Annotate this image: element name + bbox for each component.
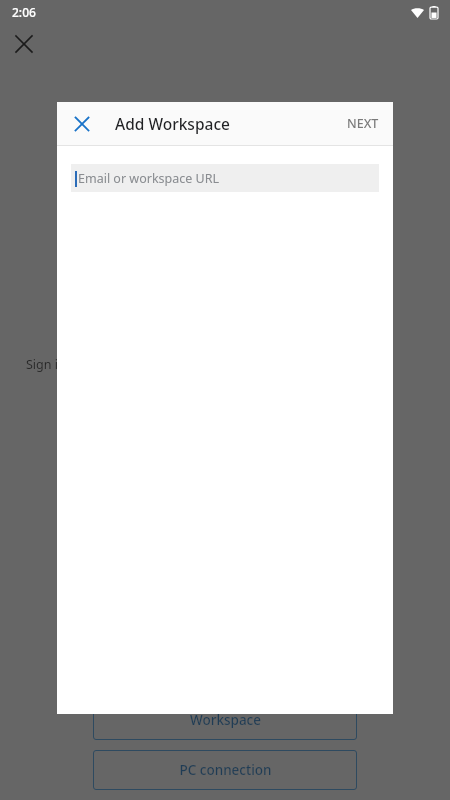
staticText: Add Workspace <box>115 113 230 134</box>
button[interactable]: Close dialog <box>63 105 101 143</box>
button[interactable]: NEXT <box>333 105 393 142</box>
staticText: Workspace <box>190 711 261 729</box>
staticText: 2:06 <box>12 4 36 20</box>
button[interactable]: Workspace <box>93 700 357 740</box>
button[interactable]: Email or workspace URL <box>71 164 379 192</box>
button[interactable]: PC connection <box>93 750 357 790</box>
staticText: NEXT <box>347 115 379 132</box>
staticText: Email or workspace URL <box>78 170 220 187</box>
staticText: PC connection <box>179 761 272 779</box>
staticText: Sign in to a Workspace or a PC <box>26 356 205 373</box>
button[interactable]: Close <box>4 24 44 64</box>
